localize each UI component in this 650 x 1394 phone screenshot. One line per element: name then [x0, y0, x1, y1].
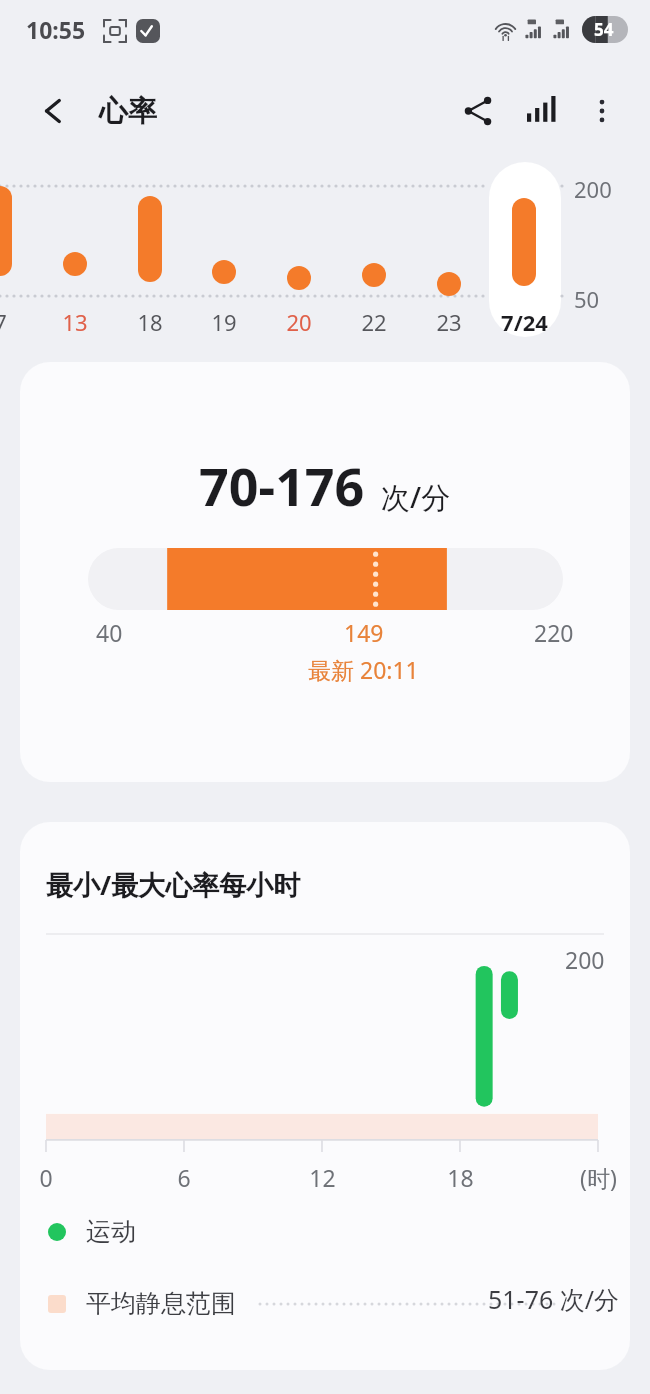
staticText: 20 [286, 307, 312, 337]
staticText: 18 [137, 307, 163, 337]
staticText: 最小/最大心率每小时 [46, 866, 301, 903]
button[interactable]: 70-176 [20, 362, 630, 782]
button[interactable] [489, 162, 561, 337]
button[interactable]: Statistics [516, 85, 568, 137]
staticText: 7 [0, 307, 7, 337]
button[interactable]: 最小/最大心率每小时 [20, 822, 630, 1370]
staticText: 149 [344, 617, 384, 648]
staticText: 54 [594, 18, 614, 41]
staticText: 200 [574, 174, 612, 204]
staticText: 18 [447, 1162, 474, 1193]
button[interactable]: Share [452, 85, 504, 137]
staticText: 40 [96, 617, 123, 648]
button[interactable]: Back [32, 89, 76, 133]
staticText: 200 [565, 944, 605, 975]
staticText: 19 [211, 307, 237, 337]
staticText: 23 [436, 307, 462, 337]
staticText: 10:55 [26, 14, 86, 45]
staticText: 12 [309, 1162, 336, 1193]
staticText: 51-76 次/分 [488, 1282, 620, 1316]
staticText: 22 [361, 307, 387, 337]
staticText: (时) [580, 1162, 617, 1193]
staticText: 运动 [86, 1216, 136, 1247]
staticText: 7/24 [501, 307, 548, 337]
staticText: 平均静息范围 [86, 1288, 236, 1319]
staticText: 次/分 [381, 477, 451, 517]
staticText: 6 [177, 1162, 191, 1193]
staticText: 50 [574, 284, 600, 314]
staticText: 心率 [99, 93, 157, 130]
staticText: 0 [39, 1162, 53, 1193]
staticText: 最新 20:11 [308, 654, 419, 685]
staticText: 220 [534, 617, 574, 648]
staticText: 13 [62, 307, 88, 337]
button[interactable]: More options [576, 85, 628, 137]
staticText: 70-176 [199, 450, 365, 521]
